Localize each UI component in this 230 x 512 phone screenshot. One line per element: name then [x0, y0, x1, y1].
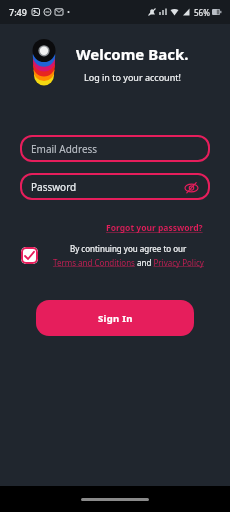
button[interactable]: Terms and Conditions and Privacy Policy [53, 257, 204, 268]
staticText: Welcome Back. [76, 44, 189, 64]
button[interactable]: Forgot your password? [106, 222, 203, 234]
staticText: 7:49 [9, 6, 27, 18]
button[interactable] [21, 247, 38, 264]
staticText: 56% [194, 7, 210, 18]
staticText: Email Address [31, 142, 98, 156]
button[interactable]: Email Address [20, 135, 210, 162]
button[interactable]: Password [20, 173, 210, 200]
staticText: Password [31, 180, 77, 194]
staticText: By continuing you agree to our [70, 243, 187, 254]
button[interactable]: Sign In [36, 300, 194, 336]
staticText: Log in to your account! [84, 71, 181, 83]
staticText: Sign In [98, 312, 133, 325]
